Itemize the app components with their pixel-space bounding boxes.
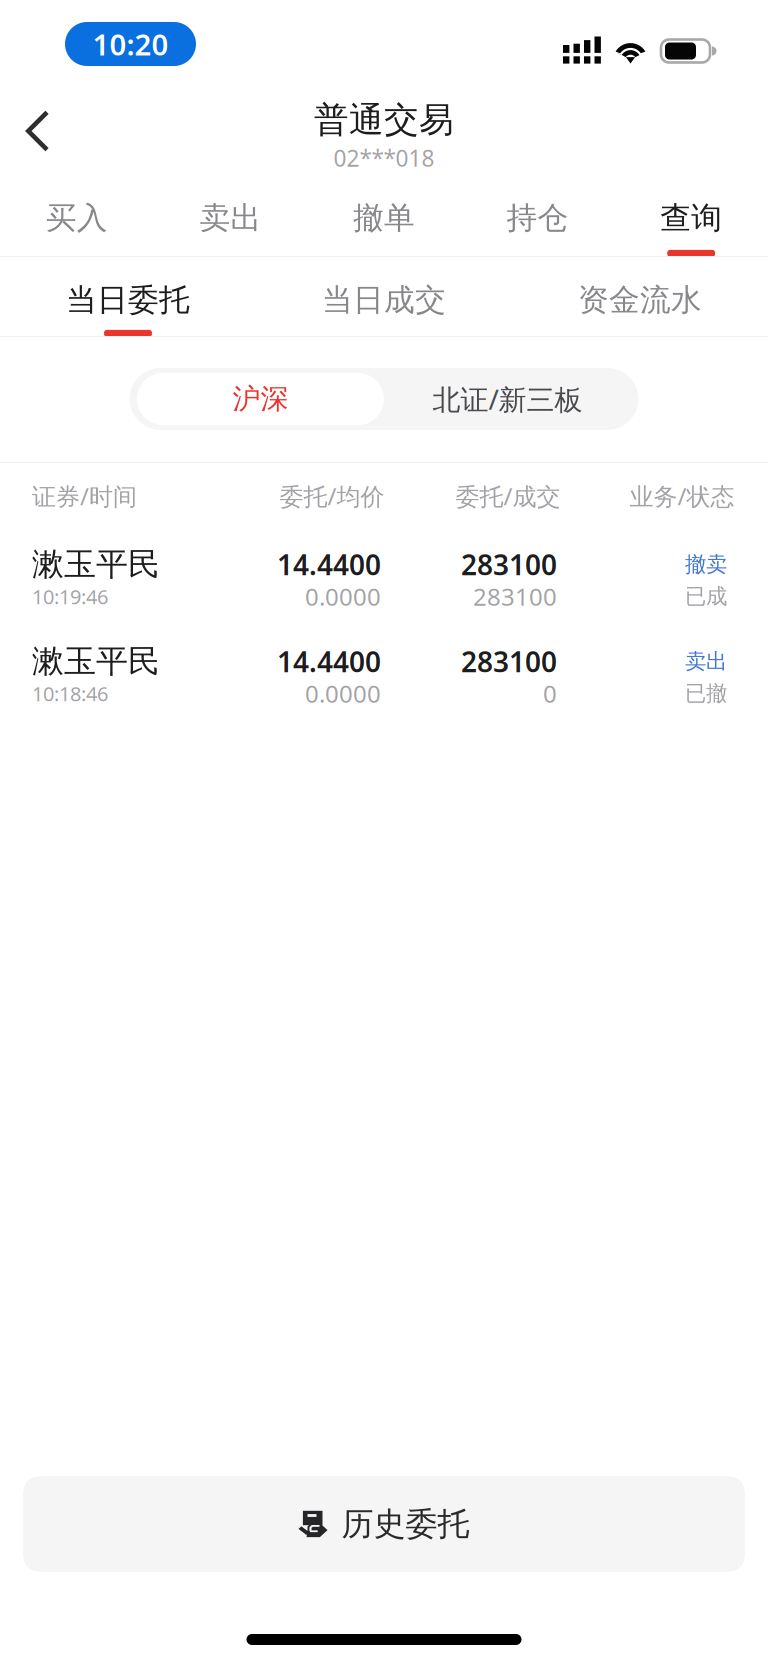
staticText: 283100 bbox=[473, 580, 557, 612]
staticText: 10:19:46 bbox=[32, 583, 108, 610]
staticText: 历史委托 bbox=[341, 1504, 469, 1544]
staticText: 283100 bbox=[461, 546, 557, 583]
button[interactable]: 历史委托 bbox=[23, 1476, 745, 1572]
staticText: 撤单 bbox=[353, 199, 415, 237]
button[interactable]: 当日成交 bbox=[256, 257, 512, 336]
staticText: 0.0000 bbox=[305, 580, 381, 612]
staticText: 撤卖 bbox=[685, 551, 727, 577]
button[interactable]: 漱玉平民 bbox=[0, 528, 768, 625]
staticText: 02***018 bbox=[333, 143, 434, 173]
staticText: 已撤 bbox=[685, 680, 727, 706]
button[interactable]: 持仓 bbox=[461, 180, 614, 256]
staticText: 普通交易 bbox=[314, 99, 454, 141]
staticText: 资金流水 bbox=[578, 281, 702, 319]
staticText: 北证/新三板 bbox=[432, 380, 582, 418]
staticText: 卖出 bbox=[199, 199, 261, 237]
staticText: 委托/成交 bbox=[455, 480, 560, 512]
button[interactable]: 资金流水 bbox=[512, 257, 768, 336]
staticText: 0 bbox=[543, 677, 557, 709]
staticText: 283100 bbox=[461, 643, 557, 680]
staticText: 当日成交 bbox=[322, 281, 446, 319]
staticText: 卖出 bbox=[685, 648, 727, 674]
staticText: 业务/状态 bbox=[629, 480, 734, 512]
staticText: 10:20 bbox=[92, 24, 168, 63]
button[interactable]: 北证/新三板 bbox=[384, 373, 631, 425]
button[interactable]: 漱玉平民 bbox=[0, 625, 768, 722]
staticText: 0.0000 bbox=[305, 677, 381, 709]
staticText: 14.4400 bbox=[277, 546, 381, 583]
staticText: 漱玉平民 bbox=[32, 545, 160, 584]
staticText: 持仓 bbox=[507, 199, 569, 237]
staticText: 买入 bbox=[46, 199, 108, 237]
staticText: 查询 bbox=[660, 199, 722, 237]
button[interactable]: 撤单 bbox=[307, 180, 461, 256]
staticText: 14.4400 bbox=[277, 643, 381, 680]
staticText: 漱玉平民 bbox=[32, 642, 160, 681]
button[interactable]: 沪深 bbox=[137, 373, 384, 425]
staticText: 当日委托 bbox=[66, 281, 190, 319]
staticText: 沪深 bbox=[232, 382, 288, 416]
staticText: 已成 bbox=[685, 583, 727, 609]
button[interactable]: Back bbox=[0, 88, 77, 160]
button[interactable]: 买入 bbox=[0, 180, 154, 256]
staticText: 10:18:46 bbox=[32, 680, 108, 707]
button[interactable]: 卖出 bbox=[154, 180, 307, 256]
button[interactable]: 当日委托 bbox=[0, 257, 256, 336]
button[interactable]: 查询 bbox=[614, 180, 768, 256]
staticText: 委托/均价 bbox=[279, 480, 384, 512]
staticText: 证券/时间 bbox=[32, 480, 137, 512]
